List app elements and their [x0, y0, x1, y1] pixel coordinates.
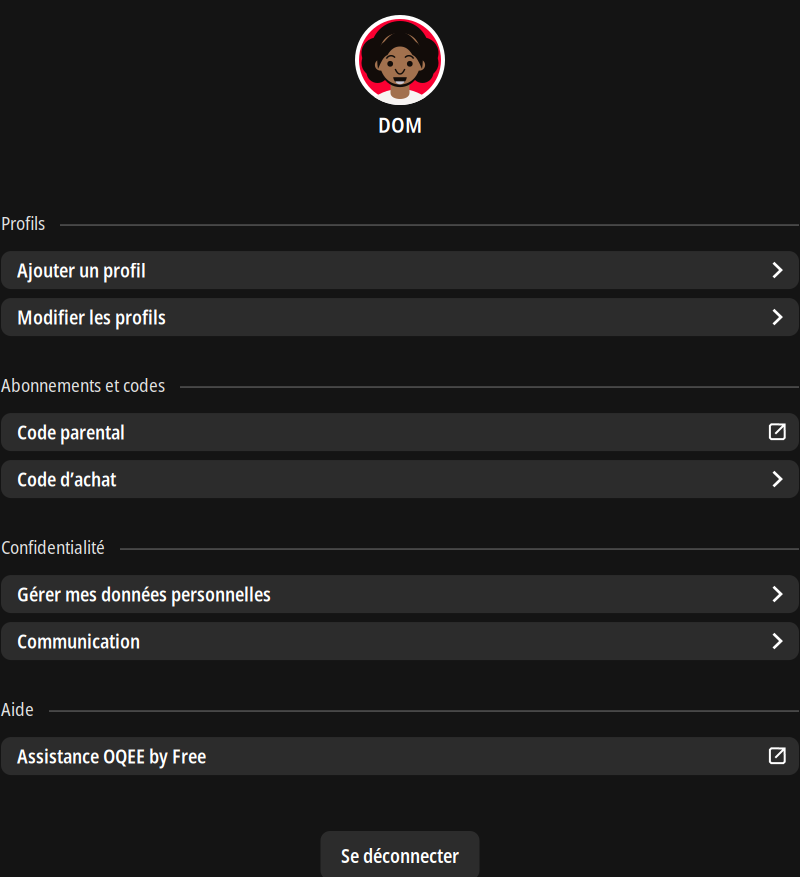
staticText: Code parental	[17, 419, 125, 445]
staticText: Profils	[1, 210, 45, 235]
button[interactable]: Communication	[1, 622, 799, 660]
staticText: Gérer mes données personnelles	[17, 581, 271, 607]
button[interactable]: Gérer mes données personnelles	[1, 575, 799, 613]
staticText: Code d’achat	[17, 466, 116, 492]
staticText: Aide	[1, 696, 34, 721]
button[interactable]: Code parental	[1, 413, 799, 451]
staticText: Assistance OQEE by Free	[17, 743, 206, 769]
button[interactable]: Modifier les profils	[1, 298, 799, 336]
button[interactable]: Assistance OQEE by Free	[1, 737, 799, 775]
staticText: Communication	[17, 628, 140, 654]
staticText: Ajouter un profil	[17, 257, 146, 283]
staticText: Modifier les profils	[17, 304, 166, 330]
button[interactable]: Se déconnecter	[320, 831, 479, 877]
staticText: Confidentialité	[1, 534, 105, 559]
staticText: Se déconnecter	[341, 842, 459, 869]
button[interactable]: Code d’achat	[1, 460, 799, 498]
staticText: DOM	[378, 110, 422, 139]
button[interactable]: Ajouter un profil	[1, 251, 799, 289]
staticText: Abonnements et codes	[1, 372, 165, 397]
